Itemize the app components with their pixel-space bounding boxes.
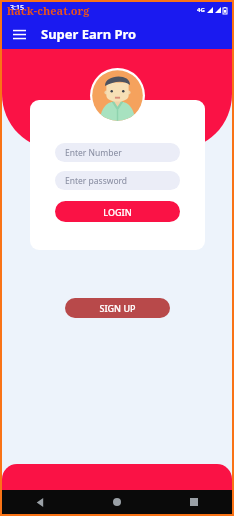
- staticText: Super Earn Pro: [41, 25, 137, 43]
- staticText: 3:15: [10, 3, 24, 13]
- staticText: hack-cheat.org: [7, 3, 90, 18]
- button[interactable]: Back: [2, 490, 78, 514]
- button[interactable]: Enter password: [55, 171, 180, 190]
- staticText: SIGN UP: [99, 302, 136, 314]
- button[interactable]: Home: [78, 490, 155, 514]
- button[interactable]: Open navigation menu: [7, 22, 31, 46]
- staticText: LOGIN: [103, 206, 132, 218]
- staticText: 4G: [197, 6, 205, 14]
- button[interactable]: Enter Number: [55, 143, 180, 162]
- staticText: Enter password: [65, 175, 128, 187]
- staticText: Enter Number: [65, 147, 122, 159]
- button[interactable]: LOGIN: [55, 201, 180, 222]
- button[interactable]: SIGN UP: [65, 298, 170, 318]
- button[interactable]: Recent apps: [155, 490, 232, 514]
